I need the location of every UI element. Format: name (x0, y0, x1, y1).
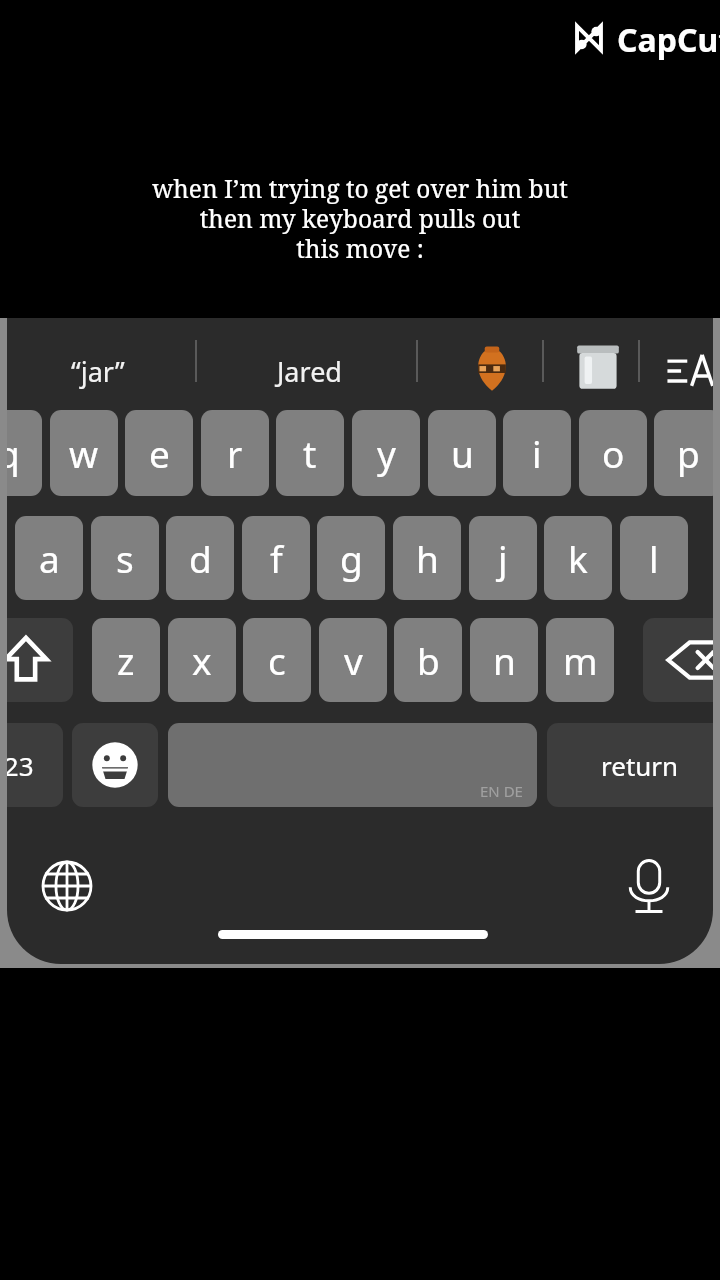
staticText: return (601, 748, 679, 783)
button[interactable]: 123 (7, 723, 63, 807)
button[interactable]: c (243, 618, 311, 702)
button[interactable]: v (319, 618, 387, 702)
button[interactable]: y (352, 410, 420, 496)
button[interactable]: h (393, 516, 461, 600)
staticText: v (344, 635, 363, 685)
staticText: o (602, 428, 625, 478)
button[interactable]: Jared (210, 338, 408, 404)
staticText: f (270, 533, 283, 583)
staticText: h (416, 533, 439, 583)
button[interactable]: Shift (7, 618, 73, 702)
staticText: c (268, 635, 286, 685)
staticText: “jar” (71, 353, 125, 390)
staticText: t (303, 428, 317, 478)
staticText: q (7, 428, 20, 478)
button[interactable]: q (7, 410, 42, 496)
staticText: Jared (277, 353, 342, 390)
staticText: e (149, 428, 170, 478)
button[interactable]: f (242, 516, 310, 600)
button[interactable]: k (544, 516, 612, 600)
button[interactable]: x (168, 618, 236, 702)
button[interactable]: p (654, 410, 713, 496)
staticText: g (340, 533, 363, 583)
staticText: n (493, 635, 516, 685)
button[interactable]: r (201, 410, 269, 496)
button[interactable]: Emoji (72, 723, 158, 807)
button[interactable]: return (547, 723, 713, 807)
button[interactable]: o (579, 410, 647, 496)
button[interactable]: “jar” (15, 338, 180, 404)
staticText: k (568, 533, 588, 583)
staticText: b (417, 635, 440, 685)
button[interactable] (459, 338, 525, 404)
staticText: when I’m trying to get over him but then… (60, 172, 660, 272)
button[interactable]: l (620, 516, 688, 600)
button[interactable]: Dictation (609, 846, 689, 926)
button[interactable]: Change keyboard (27, 846, 107, 926)
button[interactable]: z (92, 618, 160, 702)
staticText: m (563, 635, 598, 685)
button[interactable]: u (428, 410, 496, 496)
staticText: EN DE (480, 781, 523, 801)
button[interactable]: s (91, 516, 159, 600)
button[interactable]: e (125, 410, 193, 496)
button[interactable]: a (15, 516, 83, 600)
staticText: p (677, 428, 700, 478)
staticText: i (532, 428, 542, 478)
staticText: l (649, 533, 659, 583)
staticText: w (69, 428, 99, 478)
button[interactable]: w (50, 410, 118, 496)
staticText: d (189, 533, 212, 583)
button[interactable]: j (469, 516, 537, 600)
button[interactable]: m (546, 618, 614, 702)
button[interactable]: n (470, 618, 538, 702)
button[interactable]: Text formatting (660, 340, 713, 402)
staticText: CapCut (617, 18, 720, 62)
button[interactable] (567, 338, 629, 400)
button[interactable]: g (317, 516, 385, 600)
staticText: x (192, 635, 212, 685)
staticText: s (116, 533, 134, 583)
staticText: u (451, 428, 474, 478)
staticText: j (498, 533, 508, 583)
button[interactable]: d (166, 516, 234, 600)
button[interactable]: Backspace (643, 618, 713, 702)
button[interactable]: Space (168, 723, 537, 807)
button[interactable]: b (394, 618, 462, 702)
staticText: a (39, 533, 60, 583)
button[interactable]: i (503, 410, 571, 496)
staticText: 123 (7, 748, 34, 783)
staticText: r (227, 428, 243, 478)
staticText: y (377, 428, 396, 478)
staticText: z (117, 635, 135, 685)
button[interactable]: t (276, 410, 344, 496)
